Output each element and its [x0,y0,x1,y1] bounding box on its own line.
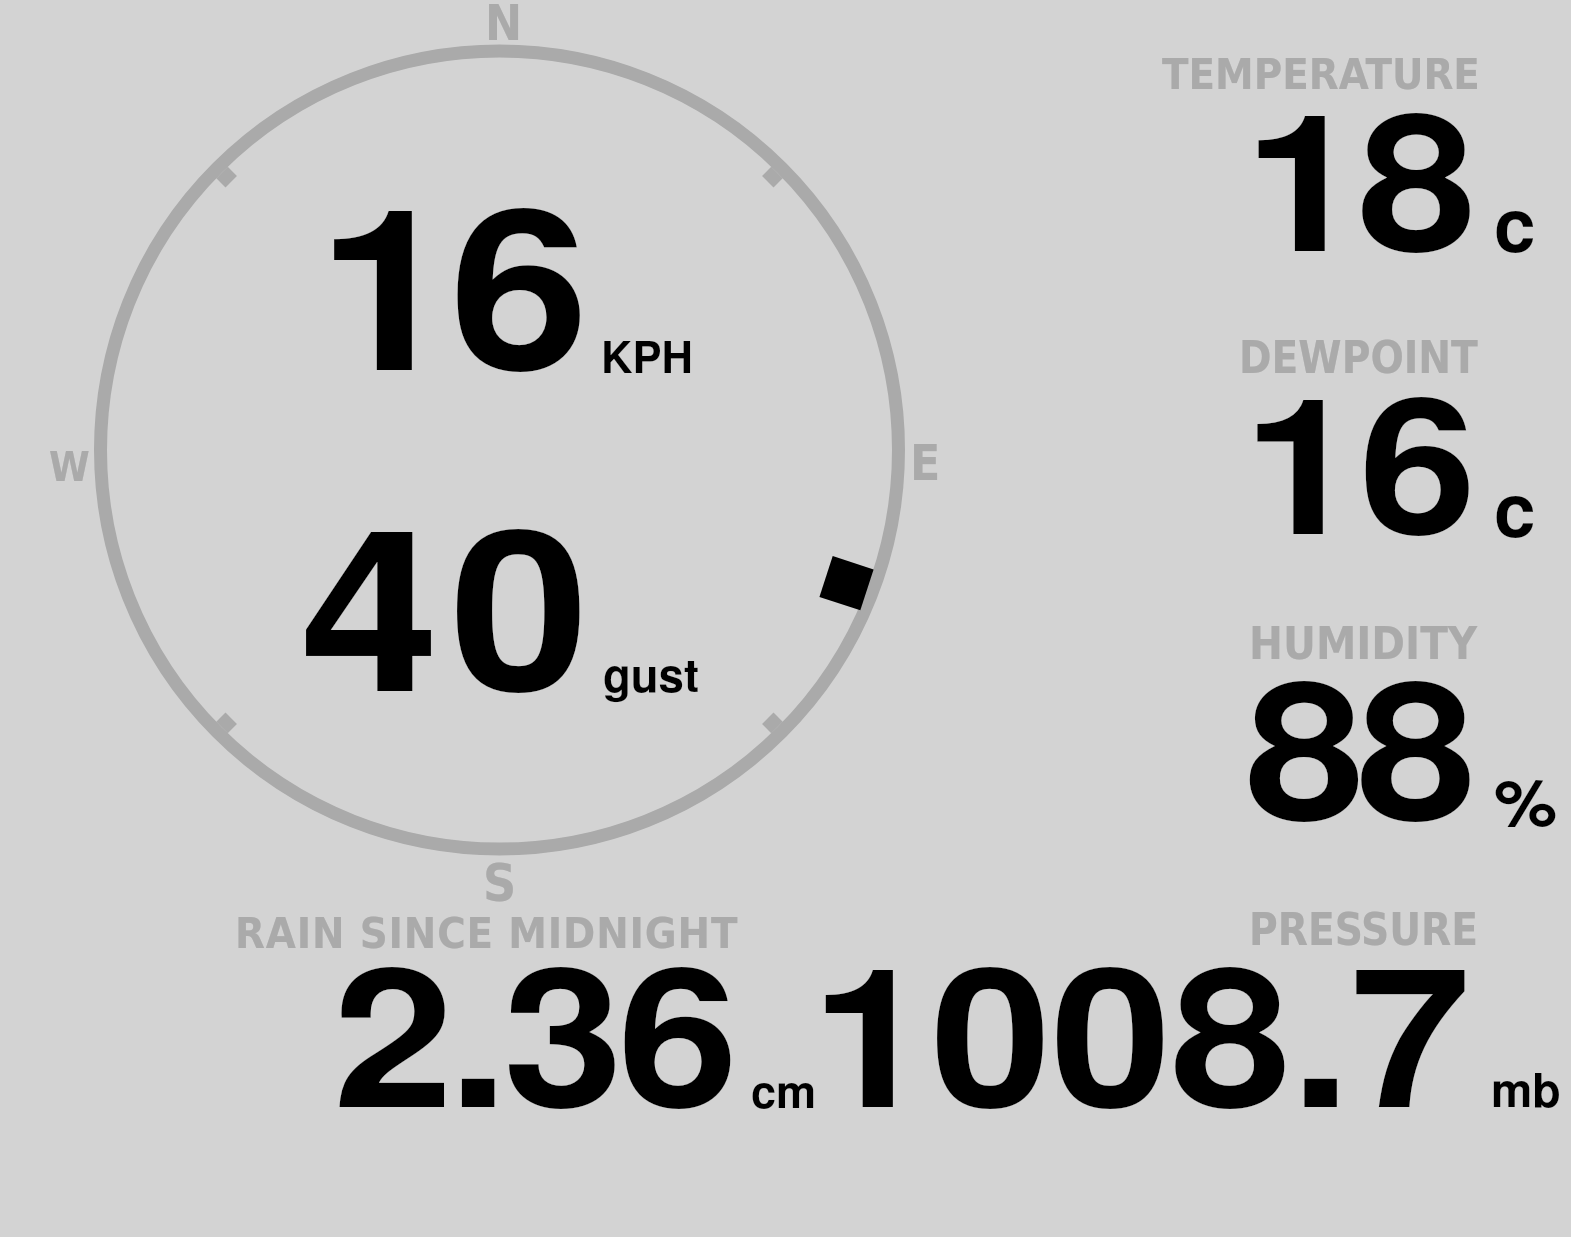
staticText: PRESSURE [1249,905,1479,956]
staticText: RAIN SINCE MIDNIGHT [235,908,739,958]
button[interactable]: Wind: 16 kph, gusting 40, from east sout… [96,46,906,856]
button[interactable]: Dewpoint 16 degrees Celsius [1100,300,1571,560]
staticText: DEWPOINT [1239,333,1478,384]
staticText: TEMPERATURE [1162,49,1480,99]
staticText: % [1494,755,1558,846]
button[interactable]: Rain since midnight 2.36 cm [180,890,830,1130]
staticText: 16 [1243,322,1476,592]
staticText: KPH [601,324,693,386]
staticText: 1008.7 [811,889,1471,1166]
staticText: cm [751,1057,817,1122]
staticText: c [1494,168,1536,275]
staticText: mb [1491,1055,1561,1122]
staticText: gust [603,641,700,706]
staticText: HUMIDITY [1249,617,1478,669]
staticText: 40 [300,439,600,760]
staticText: W [49,443,90,491]
staticText: S [483,853,517,913]
staticText: N [485,0,523,51]
button[interactable]: Pressure 1008.7 mb [830,890,1571,1130]
staticText: 88 [1245,604,1469,879]
staticText: 2.36 [333,889,734,1166]
staticText: 18 [1244,36,1471,309]
staticText: c [1494,453,1536,560]
button[interactable]: Temperature 18 degrees Celsius [1100,40,1571,280]
button[interactable]: Humidity 88 percent [1100,590,1571,850]
staticText: 16 [317,118,582,439]
staticText: E [910,434,941,491]
